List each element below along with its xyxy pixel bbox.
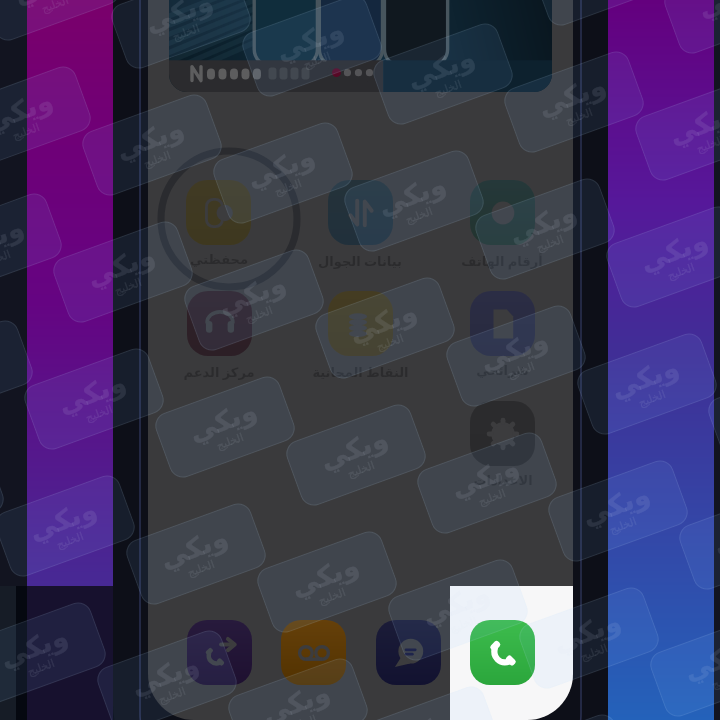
staticText: الخليج [26,657,57,678]
staticText: الخليج [113,276,144,297]
staticText: أرقام الهاتف [461,252,543,270]
staticText: الخليج [375,332,406,353]
staticText: ويكي [534,69,610,122]
staticText: ويكي [418,577,494,630]
button[interactable]: الاعدادات [470,401,535,488]
staticText: الخليج [477,487,508,508]
staticText: ويكي [112,112,188,165]
staticText: ويكي [141,0,217,38]
staticText: ويكي [636,224,712,277]
staticText: ويكي [505,196,581,249]
staticText: ويكي [243,140,319,193]
button[interactable]: Voicemail [281,620,346,685]
staticText: الاعدادات [473,473,533,488]
button[interactable]: Call forwarding [187,620,252,685]
staticText: مركز الدعم [183,363,255,381]
staticText: الخليج [40,0,71,15]
staticText: الاعدادات [473,473,533,488]
staticText: شرائحي [476,363,529,378]
button[interactable]: Messages [376,620,441,685]
staticText: الخليج [273,177,304,198]
staticText: ويكي [389,704,465,720]
staticText: مركز الدعم [183,363,255,381]
button[interactable]: شرائحي [470,291,535,378]
staticText: ويكي [345,295,421,348]
button[interactable]: Dialer [470,620,535,685]
staticText: النقاط المجانية [312,363,409,381]
staticText: ويكي [0,84,57,137]
button[interactable]: مركز الدعم [183,291,255,381]
staticText: محفظتي [190,252,248,267]
staticText: الخليج [55,530,86,551]
staticText: ويكي [272,13,348,66]
staticText: الخليج [564,106,595,127]
staticText: النقاط المجانية [312,363,409,381]
button[interactable]: أرقام الهاتف [461,180,543,270]
staticText: ويكي [374,168,450,221]
button[interactable] [169,0,552,92]
staticText: ويكي [54,366,130,419]
staticText: ويكي [185,394,261,447]
staticText: الخليج [186,558,217,579]
button[interactable]: Dialer [470,620,535,685]
button[interactable]: محفظتي [186,180,251,267]
staticText: الخليج [448,614,479,635]
staticText: الخليج [608,515,639,536]
staticText: ويكي [127,648,203,701]
staticText: الخليج [244,304,275,325]
staticText: الخليج [710,670,720,691]
button[interactable]: مركز الدعم [183,291,255,381]
staticText: الخليج [142,149,173,170]
staticText: ويكي [709,506,720,559]
staticText: الخليج [666,261,697,282]
staticText: ويكي [287,549,363,602]
staticText: الخليج [317,586,348,607]
staticText: الخليج [346,459,377,480]
staticText: الخليج [404,205,435,226]
staticText: الخليج [637,388,668,409]
staticText: محفظتي [190,252,248,267]
staticText: ويكي [476,323,552,376]
staticText: أرقام الهاتف [461,252,543,270]
staticText: الخليج [157,685,188,706]
button[interactable]: محفظتي [186,180,251,267]
button[interactable]: النقاط المجانية [312,291,409,381]
staticText: الخليج [215,431,246,452]
staticText: الخليج [0,248,13,269]
staticText: ويكي [25,493,101,546]
staticText: ويكي [10,0,86,10]
button[interactable]: الاعدادات [470,401,535,488]
button[interactable]: Voicemail [281,620,346,685]
button[interactable]: شرائحي [470,291,535,378]
staticText: ويكي [83,239,159,292]
staticText: ويكي [607,351,683,404]
staticText: ويكي [680,633,720,686]
staticText: الخليج [579,642,610,663]
staticText: بيانات الجوال [318,252,402,270]
button[interactable]: بيانات الجوال [318,180,402,270]
staticText: الخليج [11,121,42,142]
staticText: ويكي [403,41,479,94]
staticText: الخليج [171,22,202,43]
staticText: ويكي [214,267,290,320]
staticText: ويكي [258,676,334,720]
staticText: ويكي [578,478,654,531]
staticText: ويكي [665,97,720,150]
staticText: الخليج [506,360,537,381]
staticText: الخليج [695,134,720,155]
button[interactable]: النقاط المجانية [312,291,409,381]
button[interactable]: Call forwarding [187,620,252,685]
staticText: ويكي [549,605,625,658]
button[interactable]: بيانات الجوال [318,180,402,270]
button[interactable]: أرقام الهاتف [461,180,543,270]
staticText: الخليج [84,403,115,424]
staticText: ويكي [694,0,720,23]
staticText: ويكي [316,422,392,475]
button[interactable] [169,0,552,92]
staticText: الخليج [535,233,566,254]
staticText: ويكي [156,521,232,574]
staticText: شرائحي [476,363,529,378]
button[interactable]: Messages [376,620,441,685]
staticText: الخليج [288,713,319,720]
staticText: الخليج [302,50,333,71]
